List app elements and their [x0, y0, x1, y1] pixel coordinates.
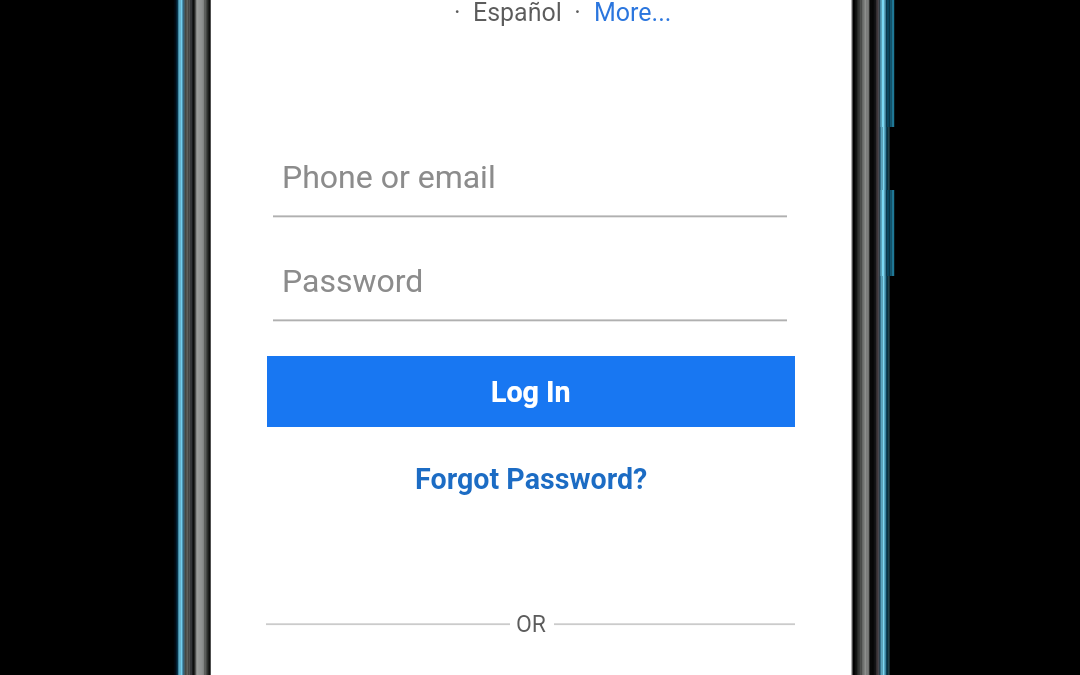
- staticText: More...: [594, 0, 672, 27]
- staticText: Log In: [491, 375, 571, 409]
- button[interactable]: Log In: [267, 356, 795, 427]
- staticText: · Español ·: [454, 0, 594, 27]
- button[interactable]: Phone or email: [273, 145, 787, 209]
- staticText: Phone or email: [282, 158, 496, 196]
- button[interactable]: · Español ·: [454, 0, 672, 29]
- staticText: Forgot Password?: [415, 462, 648, 496]
- staticText: OR: [516, 611, 546, 638]
- button[interactable]: Forgot Password?: [267, 455, 795, 503]
- staticText: Password: [282, 262, 424, 300]
- button[interactable]: Password: [273, 249, 787, 313]
